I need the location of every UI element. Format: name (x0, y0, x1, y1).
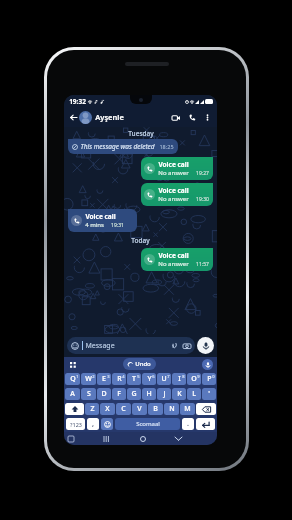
staticText: X (105, 404, 110, 414)
staticText: V (137, 404, 142, 414)
button[interactable]: S (81, 388, 96, 400)
staticText: Scomaal (136, 420, 160, 428)
staticText: 19:32 (69, 97, 86, 106)
button[interactable]: , (87, 418, 99, 430)
button[interactable]: A (65, 388, 80, 400)
button[interactable]: Z (85, 403, 99, 415)
button[interactable]: U (157, 373, 171, 385)
button[interactable]: E (97, 373, 111, 385)
staticText: Voice call (158, 186, 189, 195)
staticText: O (191, 374, 197, 384)
staticText: 8 (182, 374, 185, 379)
staticText: I (178, 374, 181, 384)
button[interactable]: Voice call (141, 157, 213, 180)
button[interactable]: K (172, 388, 186, 400)
button[interactable]: B (148, 403, 163, 415)
staticText: 6 (152, 374, 155, 379)
button[interactable] (196, 403, 216, 415)
button[interactable]: G (127, 388, 141, 400)
button[interactable]: Back (68, 112, 78, 122)
staticText: 1 (76, 374, 79, 379)
staticText: Q (70, 374, 76, 384)
button[interactable]: Home (137, 433, 148, 444)
button[interactable]: Voice message (197, 337, 214, 354)
staticText: 4 mins (85, 221, 104, 229)
button[interactable] (101, 418, 113, 430)
staticText: C (121, 404, 126, 414)
button[interactable] (65, 403, 84, 415)
button[interactable]: V (132, 403, 147, 415)
button[interactable]: Hide keyboard (67, 435, 75, 443)
staticText: Message (85, 341, 115, 351)
staticText: B (153, 404, 158, 414)
staticText: No answer (158, 195, 189, 203)
button[interactable]: Recent apps (101, 433, 112, 444)
button[interactable]: T (127, 373, 141, 385)
button[interactable]: Voice call (68, 209, 137, 232)
staticText: H (146, 389, 152, 399)
staticText: 5 (137, 374, 140, 379)
button[interactable]: Video call (169, 111, 182, 124)
button[interactable]: Profile photo (79, 111, 92, 124)
staticText: G (131, 389, 137, 399)
staticText: Y (147, 374, 152, 384)
button[interactable]: ?123 (66, 418, 85, 430)
staticText: 0 (212, 374, 215, 379)
staticText: 11:57 (196, 261, 209, 268)
button[interactable]: Voice call (141, 248, 213, 271)
staticText: K (177, 389, 182, 399)
button[interactable]: ' (202, 388, 216, 400)
staticText: No answer (158, 169, 189, 177)
button[interactable]: F (112, 388, 126, 400)
staticText: Voice call (158, 160, 189, 169)
button[interactable]: Voice input (202, 359, 213, 370)
staticText: No answer (158, 260, 189, 268)
button[interactable]: R (112, 373, 126, 385)
button[interactable]: I (172, 373, 186, 385)
button[interactable]: More options (202, 112, 213, 123)
button[interactable]: J (157, 388, 171, 400)
staticText: 3 (107, 374, 110, 379)
staticText: L (192, 389, 196, 399)
staticText: ' (208, 389, 210, 399)
staticText: T (132, 374, 136, 384)
button[interactable]: Scomaal (115, 418, 180, 430)
button[interactable]: Voice call (186, 111, 199, 124)
staticText: . (187, 419, 189, 429)
button[interactable]: Back (173, 433, 184, 444)
button[interactable]: W (81, 373, 96, 385)
button[interactable]: This message was deleted (72, 142, 174, 151)
staticText: This message was deleted (80, 142, 155, 151)
button[interactable]: D (97, 388, 111, 400)
button[interactable]: Q (65, 373, 80, 385)
staticText: Tuesday (128, 129, 154, 138)
staticText: 2 (92, 374, 95, 379)
staticText: R (117, 374, 122, 384)
button[interactable]: Undo (123, 358, 156, 370)
button[interactable]: H (142, 388, 156, 400)
button[interactable]: C (116, 403, 131, 415)
button[interactable]: M (180, 403, 195, 415)
button[interactable]: . (182, 418, 194, 430)
staticText: Voice call (158, 251, 189, 260)
staticText: Ayşenle (95, 112, 124, 122)
staticText: W (85, 374, 92, 384)
staticText: Today (131, 236, 150, 245)
staticText: 19:30 (196, 196, 209, 203)
button[interactable]: N (164, 403, 179, 415)
staticText: D (101, 389, 107, 399)
staticText: 19:31 (111, 222, 124, 229)
staticText: 4 (122, 374, 125, 379)
button[interactable]: O (187, 373, 201, 385)
staticText: J (163, 389, 166, 399)
button[interactable]: Keyboard menu (68, 360, 77, 369)
button[interactable]: Message (67, 337, 195, 354)
staticText: 18:25 (159, 143, 174, 150)
button[interactable]: L (187, 388, 201, 400)
button[interactable]: Voice call (141, 183, 213, 206)
button[interactable] (196, 418, 215, 430)
staticText: U (161, 374, 167, 384)
button[interactable]: P (202, 373, 216, 385)
button[interactable]: X (100, 403, 115, 415)
button[interactable]: Y (142, 373, 156, 385)
